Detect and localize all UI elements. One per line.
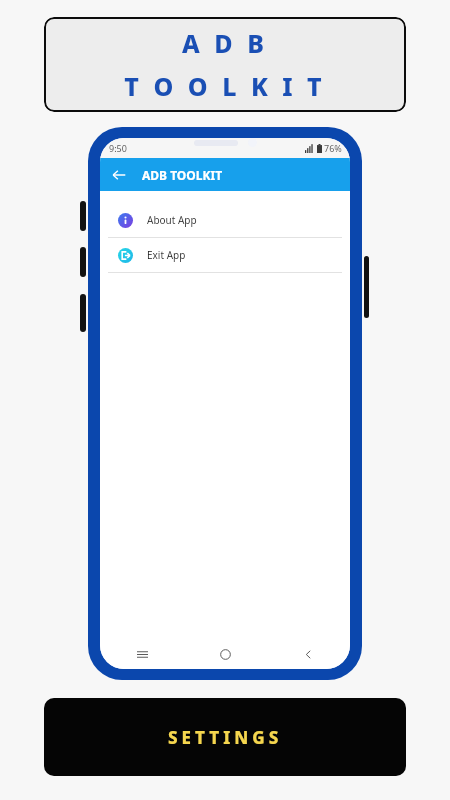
button[interactable]: Exit App xyxy=(100,238,350,272)
staticText: Exit App xyxy=(147,248,186,262)
staticText: A D B xyxy=(182,26,268,60)
staticText: About App xyxy=(147,213,197,227)
button[interactable]: SETTINGS xyxy=(44,698,406,776)
button[interactable]: Home xyxy=(184,639,267,669)
button[interactable]: About App xyxy=(100,203,350,237)
staticText: SETTINGS xyxy=(168,726,283,749)
button[interactable]: Back xyxy=(106,162,132,188)
staticText: T O O L K I T xyxy=(124,69,326,103)
button[interactable]: A D B xyxy=(44,17,406,112)
staticText: 76% xyxy=(324,142,342,154)
staticText: ADB TOOLKIT xyxy=(142,167,223,183)
button[interactable]: Recents xyxy=(100,639,184,669)
button[interactable]: Back xyxy=(267,639,350,669)
staticText: 9:50 xyxy=(109,142,127,154)
